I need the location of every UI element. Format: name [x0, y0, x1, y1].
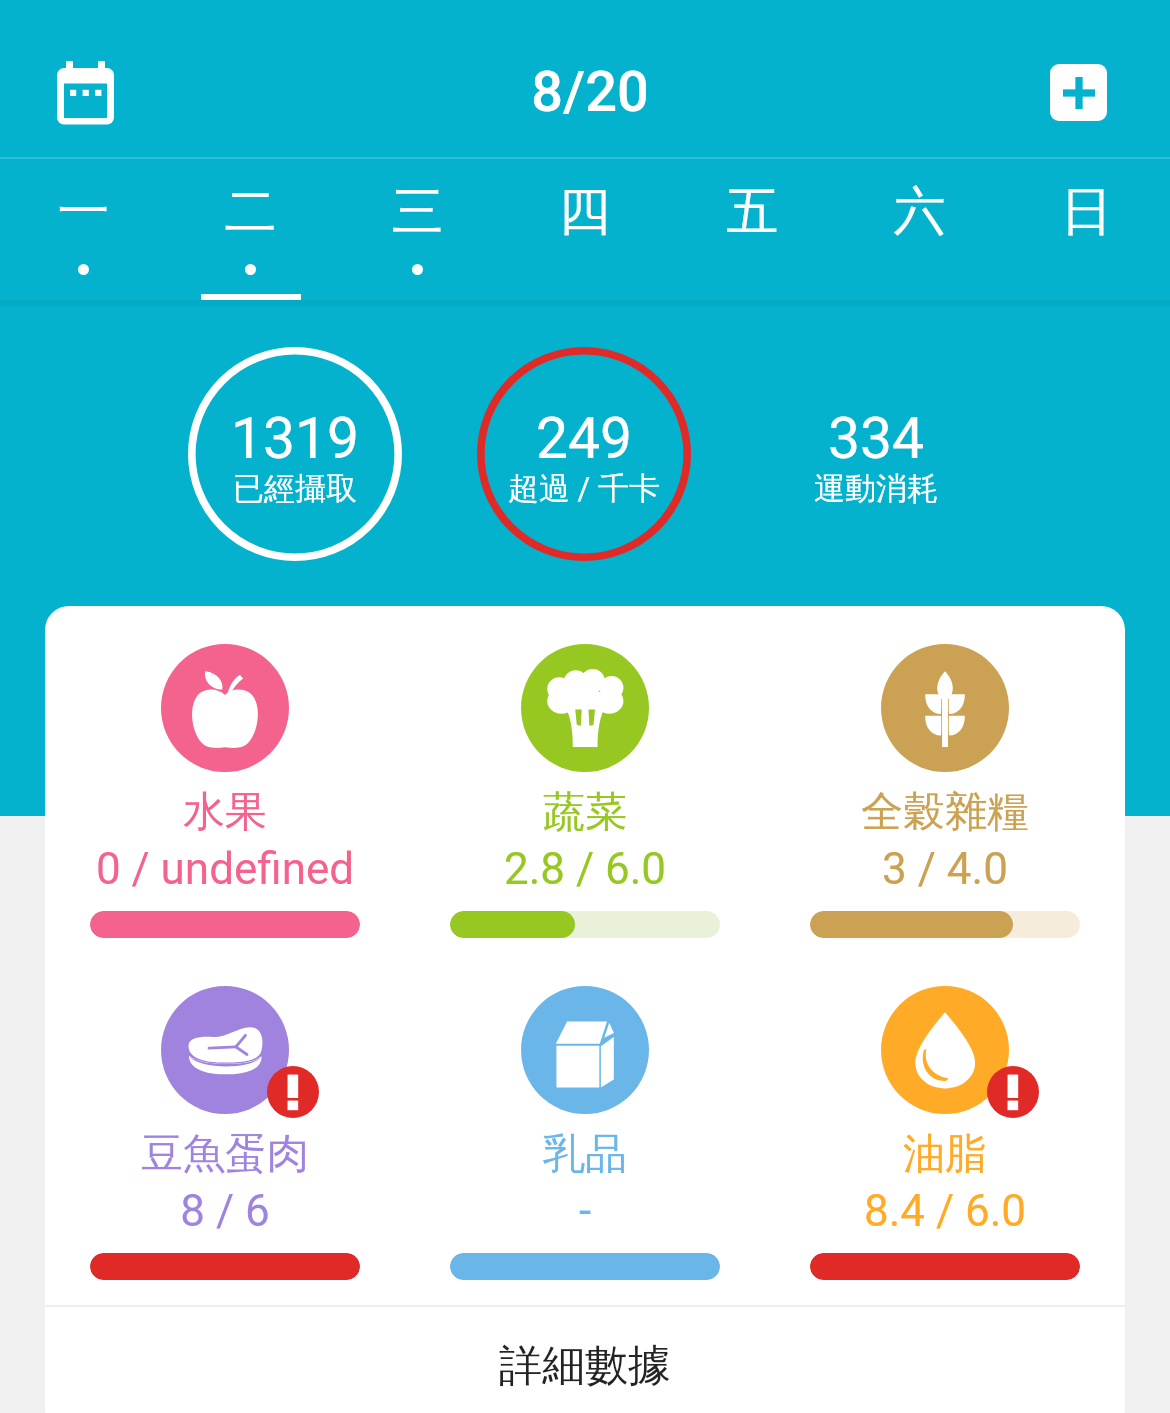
staticText: 超過 / 千卡 — [477, 469, 691, 508]
staticText: 三 — [334, 179, 501, 245]
staticText: 一 — [0, 179, 167, 245]
staticText: 油脂 — [765, 1128, 1125, 1181]
button[interactable]: 詳細數據 — [45, 1307, 1125, 1413]
staticText: 豆魚蛋肉 — [45, 1128, 405, 1181]
staticText: 2.8 / 6.0 — [405, 843, 765, 895]
button[interactable]: 五 — [669, 159, 836, 306]
staticText: 1319 — [188, 405, 402, 472]
button[interactable]: Add — [1050, 64, 1107, 121]
staticText: 詳細數據 — [499, 1339, 671, 1393]
button[interactable]: 四 — [501, 159, 668, 306]
staticText: 二 — [167, 179, 334, 245]
button[interactable]: 乳品 — [405, 980, 765, 1280]
staticText: 已經攝取 — [188, 469, 402, 508]
staticText: 乳品 — [405, 1128, 765, 1181]
staticText: 水果 — [45, 786, 405, 839]
button[interactable]: 水果 — [45, 638, 405, 938]
staticText: 3 / 4.0 — [765, 843, 1125, 895]
staticText: - — [405, 1185, 765, 1237]
button[interactable]: 249 — [477, 347, 691, 561]
staticText: 四 — [501, 179, 668, 245]
staticText: 8 / 6 — [45, 1185, 405, 1237]
button[interactable]: 二 — [167, 159, 334, 306]
staticText: 日 — [1003, 179, 1170, 245]
button[interactable]: 油脂 — [765, 980, 1125, 1280]
button[interactable]: 三 — [334, 159, 501, 306]
staticText: 全穀雜糧 — [765, 786, 1125, 839]
button[interactable]: Calendar — [45, 49, 133, 137]
staticText: 8/20 — [500, 59, 680, 125]
staticText: 334 — [769, 405, 983, 472]
button[interactable]: 豆魚蛋肉 — [45, 980, 405, 1280]
staticText: 六 — [836, 179, 1003, 245]
button[interactable]: 蔬菜 — [405, 638, 765, 938]
staticText: 蔬菜 — [405, 786, 765, 839]
button[interactable]: 1319 — [188, 347, 402, 561]
staticText: 0 / undefined — [45, 843, 405, 895]
button[interactable]: 334 — [769, 347, 983, 561]
staticText: 運動消耗 — [769, 469, 983, 508]
staticText: 8.4 / 6.0 — [765, 1185, 1125, 1237]
button[interactable]: 全穀雜糧 — [765, 638, 1125, 938]
button[interactable]: 一 — [0, 159, 167, 306]
button[interactable]: 日 — [1003, 159, 1170, 306]
button[interactable]: 六 — [836, 159, 1003, 306]
staticText: 249 — [477, 405, 691, 472]
staticText: 五 — [669, 179, 836, 245]
